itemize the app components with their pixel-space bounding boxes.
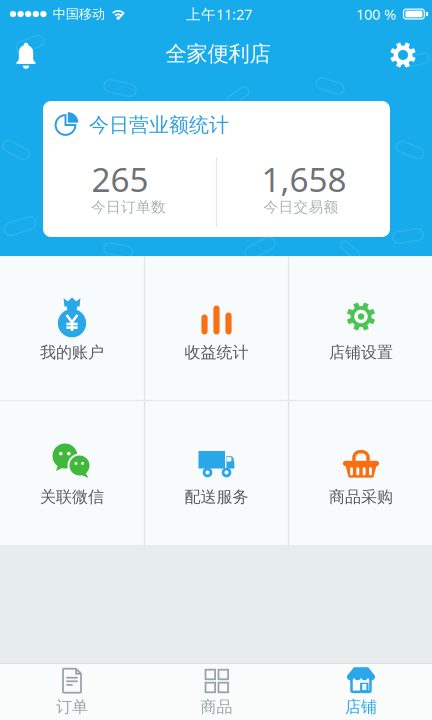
staticText: 1,658 [261, 157, 346, 201]
button[interactable]: Notifications [4, 33, 48, 77]
staticText: 收益统计 [184, 343, 248, 362]
staticText: 今日订单数 [91, 198, 166, 216]
staticText: 中国移动 [53, 6, 105, 22]
staticText: 100 % [356, 4, 396, 24]
button[interactable]: 收益统计 [145, 256, 288, 399]
button[interactable]: 我的账户 [0, 256, 143, 399]
staticText: 265 [91, 157, 148, 201]
button[interactable]: 订单 [12, 664, 132, 720]
button[interactable]: 配送服务 [145, 401, 288, 544]
staticText: 全家便利店 [165, 41, 270, 67]
button[interactable]: 商品 [156, 664, 276, 720]
staticText: 配送服务 [184, 487, 248, 507]
staticText: 订单 [56, 697, 88, 717]
staticText: 店铺 [345, 697, 377, 717]
staticText: 今日营业额统计 [89, 113, 229, 137]
button[interactable]: 关联微信 [0, 401, 143, 544]
staticText: 店铺设置 [329, 343, 393, 362]
button[interactable]: 店铺 [301, 664, 421, 720]
button[interactable]: Settings [381, 33, 425, 77]
staticText: 上午11:27 [186, 4, 252, 24]
staticText: 商品采购 [329, 487, 393, 507]
staticText: 今日交易额 [263, 198, 338, 216]
staticText: 我的账户 [40, 343, 104, 362]
staticText: 商品 [200, 697, 232, 717]
staticText: 关联微信 [40, 487, 104, 507]
button[interactable]: 店铺设置 [289, 256, 432, 399]
button[interactable]: 商品采购 [289, 401, 432, 544]
